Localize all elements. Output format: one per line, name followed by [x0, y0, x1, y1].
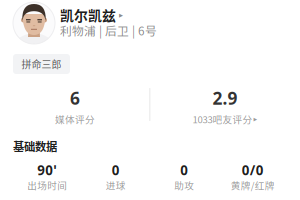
- staticText: 利物浦 | 后卫 | 6号: [60, 22, 157, 39]
- button[interactable]: 2.9: [150, 88, 300, 126]
- staticText: 出场时间: [27, 178, 67, 192]
- button[interactable]: 凯尔凯兹: [0, 0, 300, 44]
- staticText: ▸: [253, 115, 257, 123]
- staticText: 1033吧友评分: [192, 112, 252, 126]
- staticText: 媒体评分: [55, 112, 95, 126]
- staticText: 基础数据: [13, 138, 57, 154]
- staticText: ▸: [119, 10, 123, 20]
- staticText: 0: [112, 161, 120, 179]
- staticText: 0: [180, 161, 188, 179]
- staticText: 0/0: [242, 161, 264, 179]
- staticText: 黄牌/红牌: [231, 178, 275, 192]
- staticText: 凯尔凯兹: [60, 5, 116, 25]
- staticText: 2.9: [212, 86, 237, 110]
- staticText: 6: [70, 86, 80, 110]
- staticText: 拼命三郎: [21, 57, 61, 71]
- staticText: 助攻: [174, 178, 194, 192]
- staticText: 进球: [106, 178, 126, 192]
- staticText: 90': [37, 161, 57, 179]
